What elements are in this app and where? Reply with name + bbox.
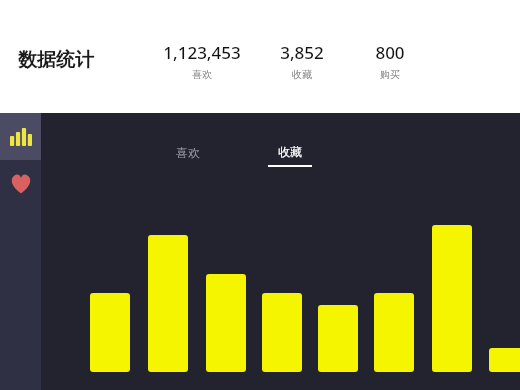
button[interactable] [318,305,358,372]
button[interactable] [262,293,302,372]
button[interactable] [90,293,130,372]
staticText: 喜欢 [137,68,267,81]
button[interactable]: Statistics [0,113,41,160]
button[interactable]: 喜欢 [170,140,206,165]
staticText: 1,123,453 [137,41,267,64]
button[interactable]: 收藏 [268,138,312,167]
staticText: 收藏 [237,68,367,81]
button[interactable] [432,225,472,372]
staticText: 800 [325,41,455,64]
button[interactable] [489,348,520,372]
button[interactable]: 数据统计 [16,46,96,74]
staticText: 3,852 [237,41,367,64]
button[interactable]: Likes [0,160,41,207]
button[interactable]: 3,852 [237,41,367,81]
staticText: 数据统计 [18,48,94,72]
button[interactable] [148,235,188,372]
button[interactable]: 800 [325,41,455,81]
staticText: 收藏 [278,144,302,159]
button[interactable]: 1,123,453 [137,41,267,81]
button[interactable] [206,274,246,372]
staticText: 喜欢 [176,145,200,160]
button[interactable] [374,293,414,372]
staticText: 购买 [325,68,455,81]
